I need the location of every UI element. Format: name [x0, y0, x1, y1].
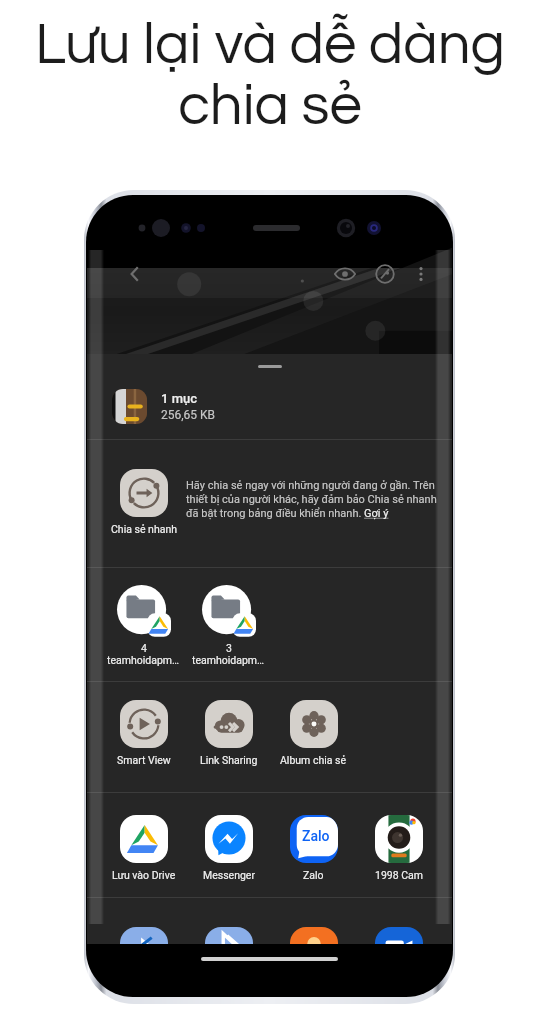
staticText: teamhoidapm…	[192, 654, 265, 666]
staticText: 4	[141, 642, 147, 654]
staticText: 3	[226, 642, 232, 654]
staticText: Zalo	[303, 869, 324, 881]
staticText: 1998 Cam	[375, 869, 423, 881]
staticText: 1 mục	[161, 391, 197, 406]
staticText: Lưu vào Drive	[112, 869, 176, 881]
button[interactable]: Messenger	[186, 815, 271, 881]
button[interactable]: App	[356, 927, 441, 975]
staticText: Lưu lại và dễ dàng chia sẻ	[0, 15, 540, 137]
button[interactable]: 1998 Cam	[356, 815, 441, 881]
button[interactable]: Chia sẻ nhanh	[100, 469, 187, 535]
staticText: teamhoidapm…	[107, 654, 180, 666]
button[interactable]: Smart View	[101, 700, 186, 766]
staticText: Smart View	[117, 754, 171, 766]
button[interactable]: 1 mục	[87, 374, 452, 439]
staticText: Album chia sẻ	[280, 754, 347, 766]
button[interactable]: 4	[101, 585, 186, 666]
button[interactable]: App	[101, 927, 186, 975]
button[interactable]: Album chia sẻ	[271, 700, 356, 766]
button[interactable]: Preview	[323, 252, 367, 296]
staticText: Chia sẻ nhanh	[111, 523, 177, 535]
button[interactable]: App	[271, 927, 356, 975]
staticText: Hãy chia sẻ ngay với những người đang ở …	[186, 479, 445, 520]
button[interactable]: Back	[113, 252, 157, 296]
button[interactable]: App	[186, 927, 271, 975]
button[interactable]: More options	[399, 252, 443, 296]
button[interactable]: 3	[186, 585, 271, 666]
button[interactable]: Link Sharing	[186, 700, 271, 766]
staticText: Zalo	[302, 828, 330, 844]
button[interactable]: Zalo	[271, 815, 356, 881]
button[interactable]: Lưu vào Drive	[101, 815, 186, 881]
staticText: 256,65 KB	[161, 408, 216, 422]
staticText: Link Sharing	[200, 754, 258, 766]
button[interactable]: Edit	[363, 252, 407, 296]
staticText: Messenger	[203, 869, 255, 881]
